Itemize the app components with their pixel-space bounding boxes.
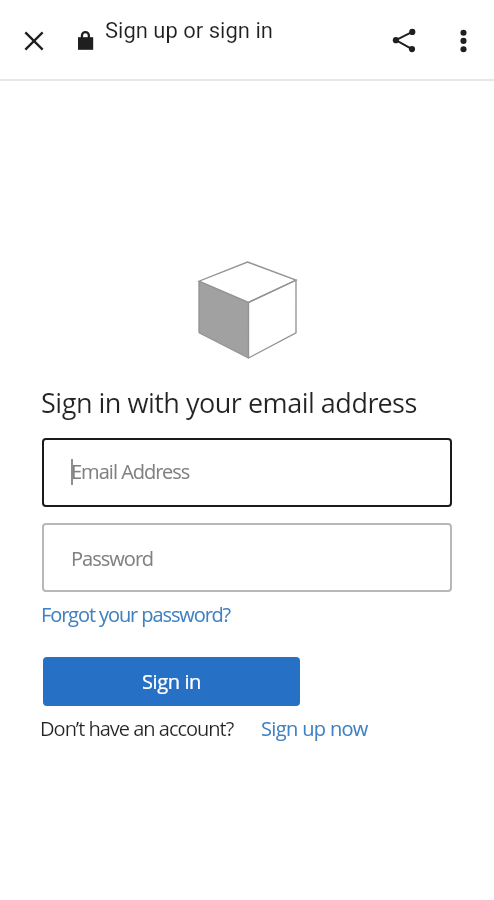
button[interactable]: Sign up now	[261, 715, 368, 742]
staticText: Sign in with your email address	[41, 384, 417, 421]
button[interactable]: Close	[10, 17, 58, 65]
button[interactable]: Password	[42, 523, 452, 592]
staticText: Sign in	[142, 668, 201, 695]
staticText: Password	[71, 545, 153, 572]
button[interactable]: Share	[380, 17, 428, 65]
button[interactable]: Forgot your password?	[41, 601, 231, 628]
button[interactable]: Email Address	[42, 438, 452, 507]
staticText: Don’t have an account?	[40, 715, 234, 742]
button[interactable]: Sign in	[43, 657, 300, 706]
staticText: Sign up or sign in	[105, 18, 273, 44]
button[interactable]: More options	[440, 17, 488, 65]
staticText: Email Address	[71, 458, 190, 485]
